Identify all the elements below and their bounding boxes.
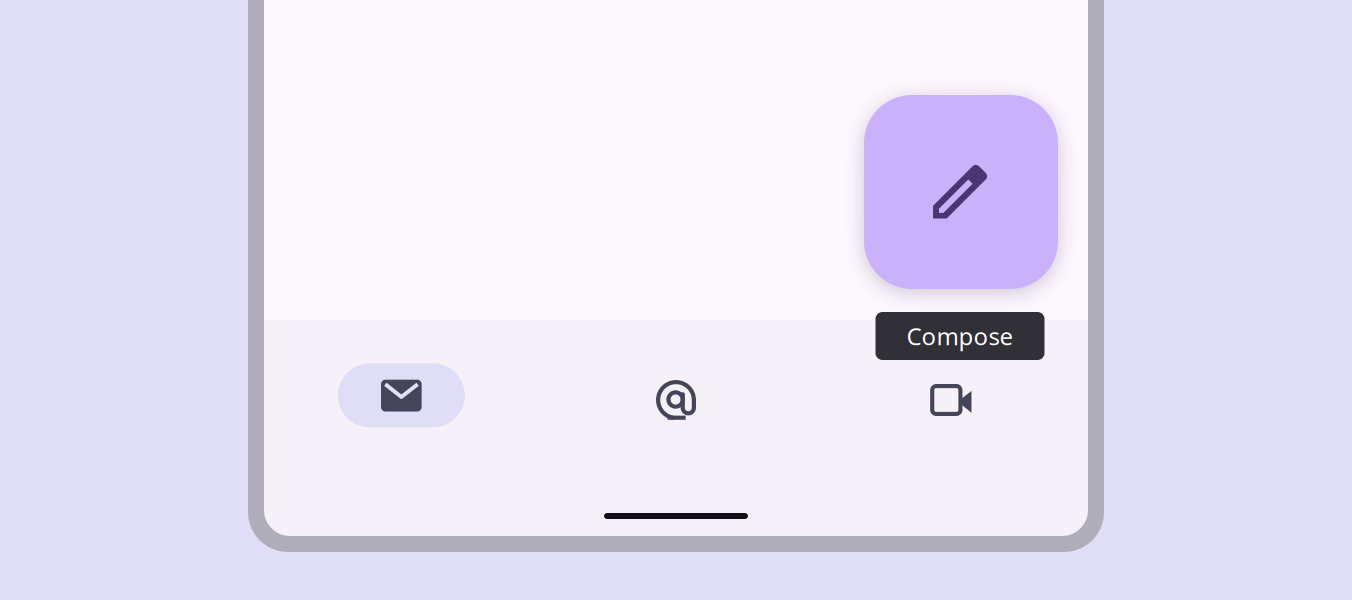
button[interactable]: Compose bbox=[864, 95, 1058, 289]
button[interactable]: Mentions bbox=[539, 360, 813, 440]
button[interactable]: Mail bbox=[264, 360, 539, 440]
staticText: Compose bbox=[906, 320, 1013, 352]
button[interactable]: Video meeting bbox=[813, 360, 1088, 440]
